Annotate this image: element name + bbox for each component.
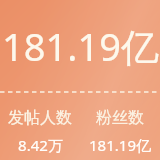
button[interactable]: 粉丝数 181.19亿 <box>80 93 160 160</box>
staticText: 8.42万 <box>18 135 63 155</box>
staticText: 181.19亿 <box>89 135 151 155</box>
button[interactable]: 发帖人数 8.42万 <box>0 93 80 160</box>
button[interactable]: 181.19亿 <box>0 0 160 91</box>
staticText: 粉丝数 <box>96 108 144 128</box>
staticText: 发帖人数 <box>8 108 72 128</box>
staticText: 181.19亿 <box>2 20 159 72</box>
